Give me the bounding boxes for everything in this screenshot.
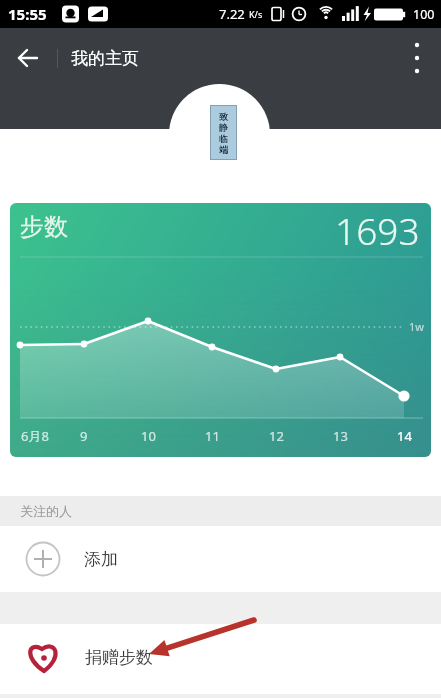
staticText: 1693 (335, 205, 420, 255)
staticText: 临 (219, 133, 228, 144)
button[interactable]: 致 (210, 105, 237, 160)
staticText: 端 (219, 144, 228, 155)
staticText: 关注的人 (20, 503, 72, 519)
staticText: 捐赠步数 (85, 647, 153, 668)
staticText: 我的主页 (71, 48, 139, 69)
staticText: 9 (80, 427, 88, 445)
button[interactable]: 捐赠步数 (0, 624, 441, 694)
button[interactable] (0, 28, 56, 88)
staticText: 11 (205, 427, 220, 445)
staticText: 添加 (84, 549, 118, 570)
button[interactable]: 添加 (0, 526, 441, 592)
staticText: 6月8 (21, 427, 49, 445)
staticText: 15:55 (8, 4, 47, 24)
button[interactable]: 步数 (10, 203, 431, 457)
staticText: 静 (219, 122, 228, 133)
staticText: 步数 (20, 212, 68, 242)
staticText: 7.22 (219, 5, 249, 23)
staticText: 100 (413, 6, 435, 23)
staticText: 12 (269, 427, 284, 445)
staticText: 13 (333, 427, 348, 445)
staticText: K/s (249, 8, 263, 20)
staticText: 10 (141, 427, 156, 445)
staticText: 致 (219, 111, 228, 122)
staticText: 1w (409, 319, 424, 334)
button[interactable] (393, 28, 441, 88)
staticText: 14 (397, 427, 412, 445)
